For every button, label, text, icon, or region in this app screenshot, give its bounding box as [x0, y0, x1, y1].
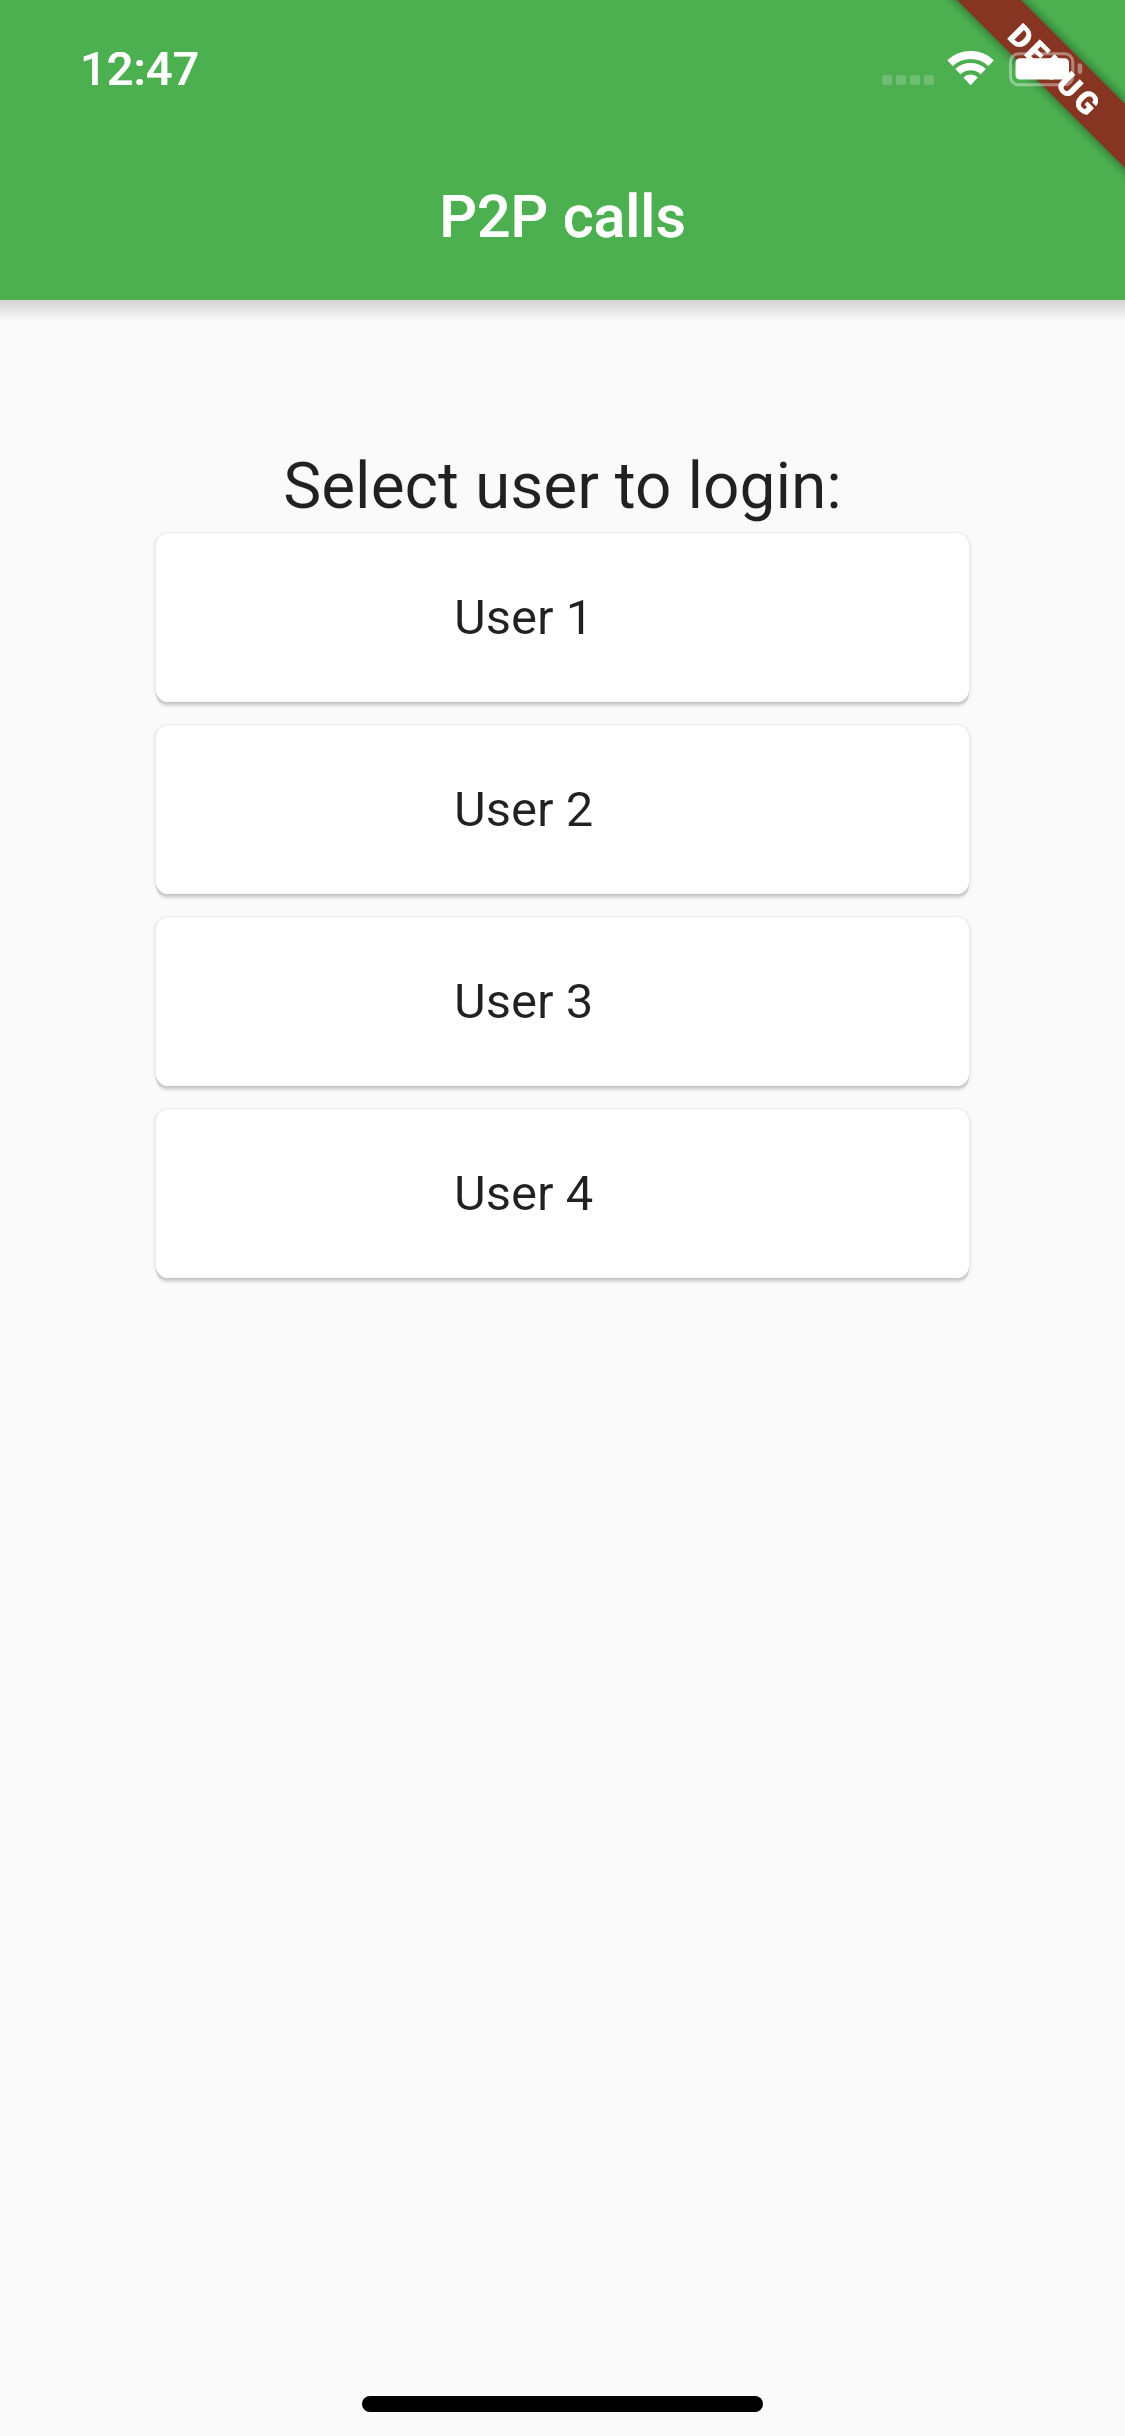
staticText: 12:47: [80, 41, 200, 96]
staticText: User 3: [454, 973, 594, 1030]
staticText: User 4: [454, 1165, 594, 1222]
staticText: DEBUG: [1001, 17, 1110, 125]
other: Wi-Fi: [947, 50, 995, 86]
staticText: User 1: [454, 589, 594, 646]
other: Battery: [1009, 52, 1084, 86]
button[interactable]: User 3: [156, 917, 969, 1086]
button[interactable]: User 4: [156, 1109, 969, 1278]
staticText: P2P calls: [0, 182, 1125, 251]
staticText: Select user to login:: [0, 449, 1125, 524]
staticText: User 2: [454, 781, 594, 838]
button[interactable]: User 1: [156, 533, 969, 702]
other: Mobile signal: [882, 75, 934, 85]
button[interactable]: User 2: [156, 725, 969, 894]
